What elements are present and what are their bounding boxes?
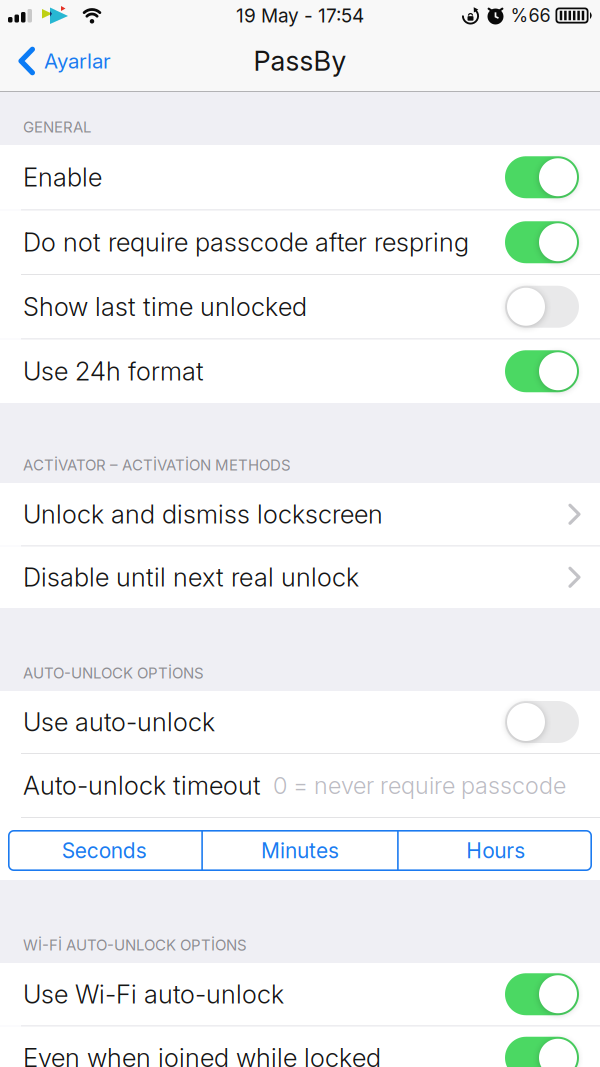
button[interactable]: Seconds	[7, 830, 201, 871]
button[interactable]: Ayarlar	[0, 46, 111, 75]
button[interactable]: Enable	[0, 145, 600, 209]
staticText: 19 May - 17:54	[236, 4, 364, 27]
staticText: Hours	[466, 838, 525, 863]
button[interactable]: Use 24h format	[0, 339, 600, 403]
button[interactable]: Use auto-unlock	[0, 691, 600, 753]
staticText: Disable until next real unlock	[23, 562, 359, 593]
staticText: %66	[510, 5, 550, 26]
staticText: ACTİVATOR – ACTİVATİON METHODS	[23, 456, 291, 474]
button[interactable]: Hours	[399, 830, 593, 871]
staticText: AUTO-UNLOCK OPTİONS	[23, 664, 204, 682]
button[interactable]: Auto-unlock timeout	[0, 754, 600, 817]
staticText: Even when joined while locked	[23, 1042, 381, 1067]
button[interactable]: Minutes	[203, 830, 397, 871]
staticText: Do not require passcode after respring	[23, 227, 469, 258]
button[interactable]: Even when joined while locked	[0, 1026, 600, 1067]
staticText: Minutes	[261, 838, 339, 863]
button[interactable]: Use Wi-Fi auto-unlock	[0, 963, 600, 1025]
staticText: Wİ-Fİ AUTO-UNLOCK OPTİONS	[23, 936, 247, 954]
staticText: Seconds	[62, 838, 147, 863]
staticText: Use 24h format	[23, 356, 204, 387]
staticText: Enable	[23, 162, 102, 193]
button[interactable]: Do not require passcode after respring	[0, 210, 600, 274]
staticText: Use Wi-Fi auto-unlock	[23, 979, 284, 1010]
staticText: PassBy	[253, 45, 346, 77]
staticText: Show last time unlocked	[23, 291, 307, 322]
staticText: GENERAL	[23, 118, 91, 136]
staticText: Use auto-unlock	[23, 707, 215, 737]
staticText: Unlock and dismiss lockscreen	[23, 499, 383, 530]
staticText: Auto-unlock timeout	[23, 770, 261, 801]
staticText: 0 = never require passcode	[273, 771, 566, 800]
button[interactable]: Unlock and dismiss lockscreen	[0, 483, 600, 545]
button[interactable]: Disable until next real unlock	[0, 546, 600, 608]
button[interactable]: Show last time unlocked	[0, 275, 600, 338]
staticText: Ayarlar	[44, 49, 111, 73]
